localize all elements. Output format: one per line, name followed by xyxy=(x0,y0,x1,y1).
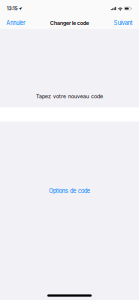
staticText: 13:15 xyxy=(7,6,18,11)
button[interactable]: Suivant xyxy=(109,16,138,30)
staticText: Options de code xyxy=(49,187,90,194)
staticText: Suivant xyxy=(114,20,133,26)
staticText: Changer le code xyxy=(50,20,89,26)
button[interactable]: Options de code xyxy=(41,184,98,197)
staticText: Tapez votre nouveau code xyxy=(36,93,103,99)
button[interactable]: Annuler xyxy=(1,16,30,30)
staticText: Annuler xyxy=(6,20,25,26)
